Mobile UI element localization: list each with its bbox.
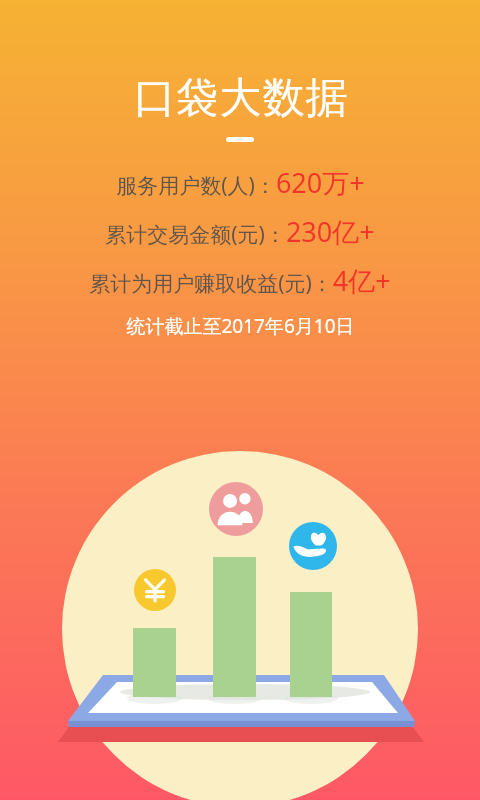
staticText: 服务用户数(人)：620万+ <box>116 164 365 201</box>
staticText: 累计为用户赚取收益(元)：4亿+ <box>89 262 391 299</box>
staticText: 统计截止至2017年6月10日 <box>126 313 355 339</box>
button[interactable]: 累计交易金额(元)：230亿+ <box>0 213 480 250</box>
staticText: 累计交易金额(元)：230亿+ <box>105 213 375 250</box>
staticText: 口袋大数据 <box>133 72 348 125</box>
button[interactable]: 累计为用户赚取收益(元)：4亿+ <box>0 262 480 299</box>
button[interactable]: 服务用户数(人)：620万+ <box>0 164 480 201</box>
